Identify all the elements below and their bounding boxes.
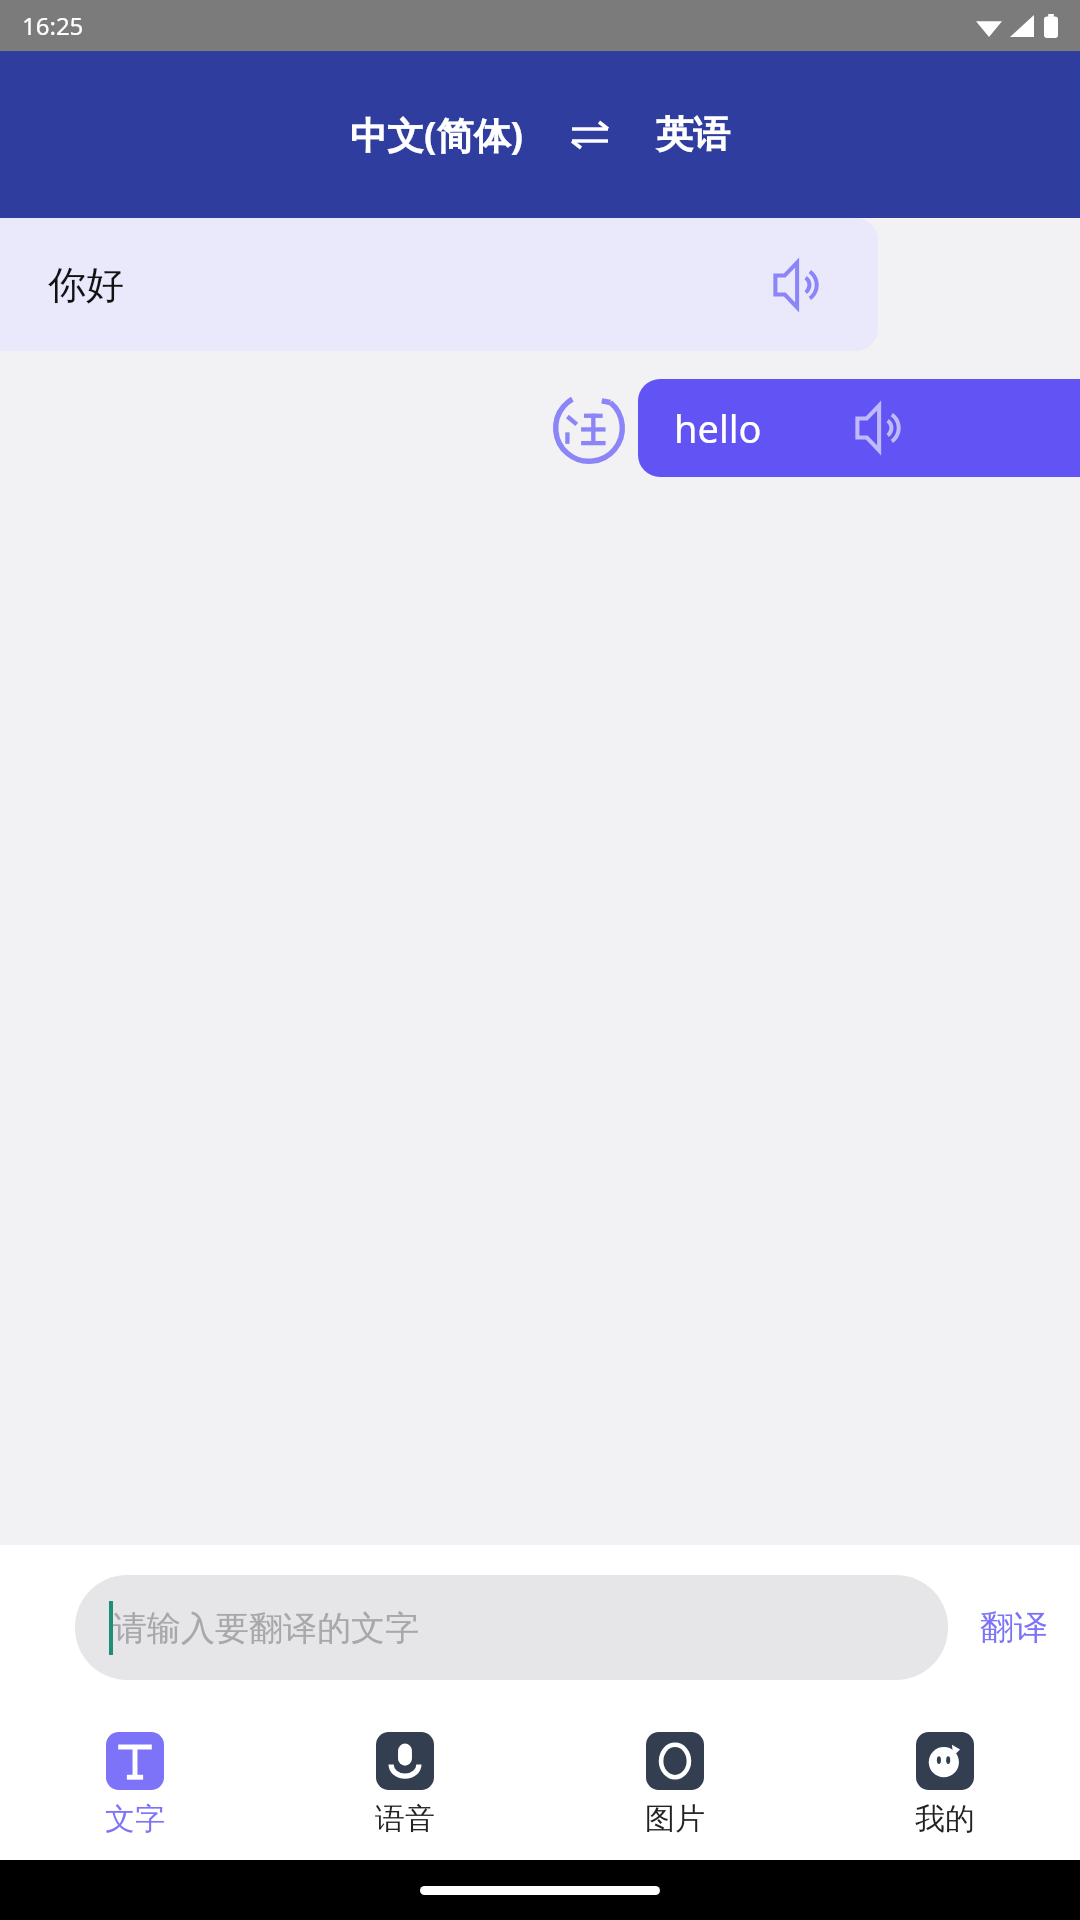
staticText: 翻译 bbox=[980, 1606, 1048, 1649]
button[interactable]: 我的 bbox=[810, 1728, 1080, 1842]
staticText: hello bbox=[674, 402, 762, 454]
button[interactable]: 文字 bbox=[0, 1728, 270, 1842]
button[interactable]: Translate bbox=[546, 385, 632, 471]
staticText: 英语 bbox=[656, 111, 730, 158]
button[interactable]: Play source audio bbox=[766, 255, 826, 315]
button[interactable]: Play translation audio bbox=[848, 398, 908, 458]
button[interactable]: 图片 bbox=[540, 1728, 810, 1842]
staticText: 我的 bbox=[915, 1800, 975, 1838]
staticText: 你好 bbox=[48, 261, 124, 309]
staticText: 中文(简体) bbox=[350, 109, 524, 160]
button[interactable]: 请输入要翻译的文字 bbox=[75, 1575, 948, 1680]
button[interactable]: hello bbox=[638, 379, 1080, 477]
staticText: 请输入要翻译的文字 bbox=[113, 1607, 419, 1650]
staticText: 语音 bbox=[375, 1800, 435, 1838]
button[interactable]: 你好 bbox=[0, 218, 878, 351]
button[interactable]: 中文(简体) bbox=[344, 103, 530, 166]
button[interactable]: 语音 bbox=[270, 1728, 540, 1842]
staticText: 16:25 bbox=[22, 9, 84, 42]
button[interactable]: 英语 bbox=[650, 105, 736, 164]
button[interactable]: 翻译 bbox=[974, 1600, 1054, 1655]
staticText: 图片 bbox=[645, 1800, 705, 1838]
staticText: 文字 bbox=[105, 1800, 165, 1838]
button[interactable]: Swap languages bbox=[566, 111, 614, 159]
